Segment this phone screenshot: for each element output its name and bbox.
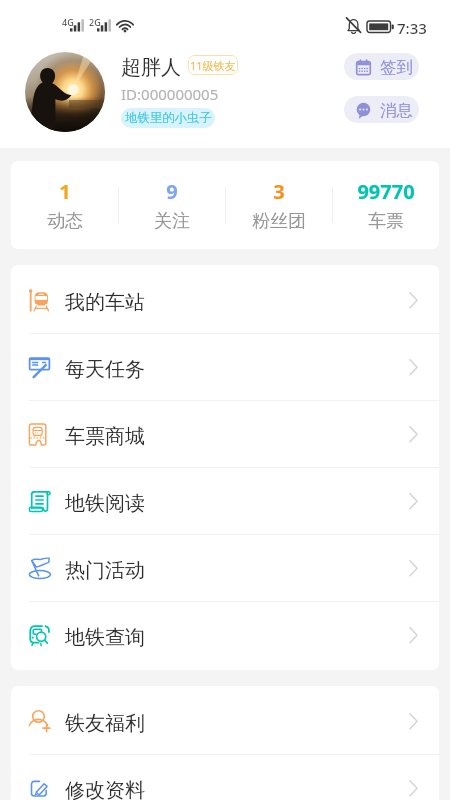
staticText: 4G bbox=[62, 16, 74, 28]
staticText: 签到 bbox=[380, 57, 413, 78]
staticText: 9 bbox=[166, 178, 178, 205]
button[interactable]: 99770 bbox=[333, 178, 439, 233]
staticText: 修改资料 bbox=[65, 778, 145, 800]
button[interactable]: 铁友福利 bbox=[11, 688, 439, 754]
staticText: 热门活动 bbox=[65, 558, 145, 583]
button[interactable]: Messages bbox=[344, 96, 419, 123]
staticText: 99770 bbox=[357, 178, 415, 205]
button[interactable]: 修改资料 bbox=[11, 755, 439, 800]
staticText: 1 bbox=[59, 178, 71, 205]
staticText: 地铁查询 bbox=[65, 625, 145, 650]
staticText: 每天任务 bbox=[65, 357, 145, 382]
staticText: 超胖人 bbox=[121, 55, 181, 80]
staticText: 车票商城 bbox=[65, 424, 145, 449]
button[interactable]: 热门活动 bbox=[11, 535, 439, 601]
button[interactable]: 地铁查询 bbox=[11, 602, 439, 668]
button[interactable]: 11级铁友 bbox=[188, 55, 238, 75]
staticText: 11级铁友 bbox=[190, 58, 236, 73]
staticText: 3 bbox=[273, 178, 285, 205]
staticText: ID:000000005 bbox=[121, 84, 219, 104]
staticText: 7:33 bbox=[397, 18, 427, 38]
button[interactable]: Sign in bbox=[344, 53, 419, 80]
staticText: 关注 bbox=[154, 210, 190, 233]
button[interactable]: 1 bbox=[11, 178, 118, 233]
button[interactable]: 地铁阅读 bbox=[11, 468, 439, 534]
staticText: 粉丝团 bbox=[252, 210, 306, 233]
staticText: 消息 bbox=[380, 100, 413, 121]
button[interactable]: 9 bbox=[119, 178, 225, 233]
staticText: 地铁阅读 bbox=[65, 491, 145, 516]
staticText: 铁友福利 bbox=[65, 711, 145, 736]
staticText: 2G bbox=[89, 16, 101, 28]
button[interactable]: 3 bbox=[226, 178, 332, 233]
button[interactable]: 地铁里的小虫子 bbox=[121, 108, 215, 128]
button[interactable]: 我的车站 bbox=[11, 267, 439, 333]
staticText: 车票 bbox=[368, 210, 404, 233]
button[interactable]: 每天任务 bbox=[11, 334, 439, 400]
staticText: 地铁里的小虫子 bbox=[125, 110, 212, 126]
button[interactable]: 车票商城 bbox=[11, 401, 439, 467]
staticText: 动态 bbox=[47, 210, 83, 233]
button[interactable]: User avatar bbox=[25, 52, 105, 132]
staticText: 我的车站 bbox=[65, 290, 145, 315]
